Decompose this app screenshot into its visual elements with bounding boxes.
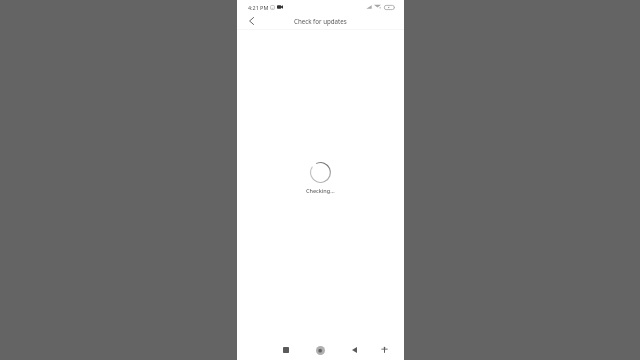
staticText: Checking… bbox=[306, 187, 335, 194]
button[interactable]: Back bbox=[345, 341, 363, 359]
staticText: 4:21 PM bbox=[248, 4, 269, 11]
button[interactable]: Accessibility bbox=[375, 341, 393, 359]
button[interactable]: Recents bbox=[277, 341, 295, 359]
button[interactable]: Back bbox=[244, 14, 258, 28]
staticText: Check for updates bbox=[294, 17, 347, 25]
button[interactable]: Home bbox=[311, 341, 329, 359]
